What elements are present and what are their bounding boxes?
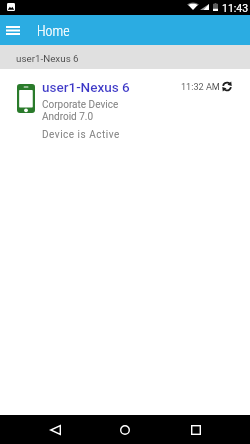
button[interactable]: Back	[39, 415, 72, 444]
button[interactable]: Open navigation drawer	[0, 15, 26, 45]
button[interactable]: Recent apps	[179, 415, 212, 444]
staticText: Android 7.0	[42, 111, 94, 123]
staticText: 11:43	[222, 2, 249, 14]
staticText: Device is Active	[42, 129, 120, 141]
staticText: Corporate Device	[42, 99, 119, 111]
button[interactable]: Refresh device status	[217, 77, 237, 95]
staticText: Home	[37, 23, 70, 39]
staticText: user1-Nexus 6	[42, 79, 130, 95]
button[interactable]: user1-Nexus 6	[0, 69, 250, 159]
staticText: user1-Nexus 6	[16, 53, 79, 64]
staticText: 11:32 AM	[181, 82, 220, 93]
button[interactable]: user1-Nexus 6	[0, 45, 250, 69]
button[interactable]: Home	[108, 415, 141, 444]
